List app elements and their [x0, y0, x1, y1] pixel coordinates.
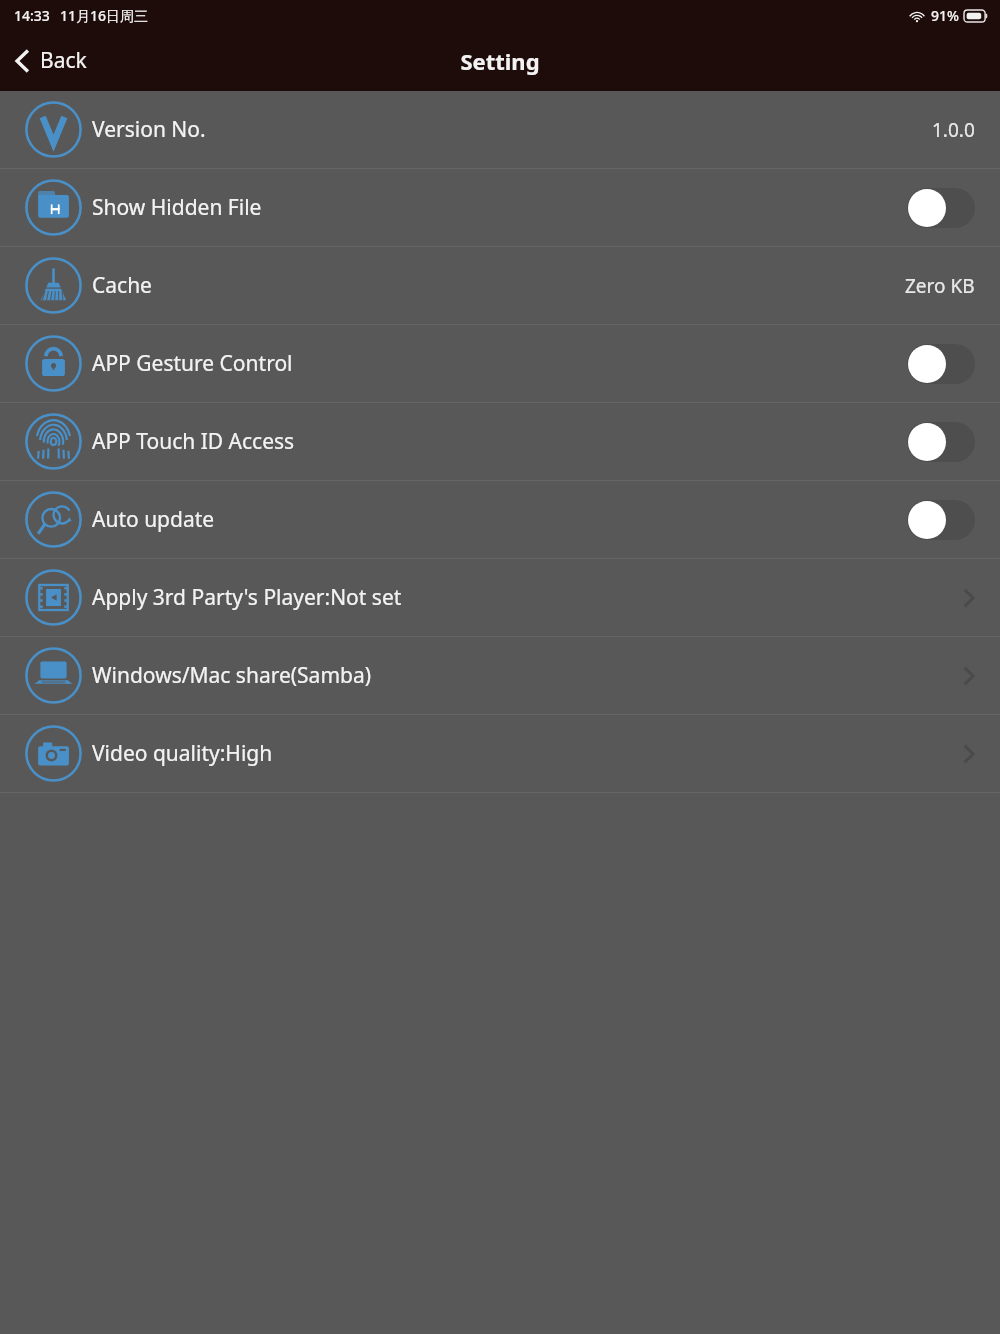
staticText: Auto update: [92, 505, 907, 534]
staticText: Version No.: [92, 115, 932, 144]
staticText: Zero KB: [905, 273, 975, 299]
staticText: Back: [40, 46, 87, 75]
button[interactable]: APP Touch ID Access: [0, 403, 1000, 480]
button[interactable]: Toggle: [907, 188, 975, 228]
staticText: Video quality:High: [92, 739, 962, 768]
button[interactable]: Toggle: [907, 422, 975, 462]
staticText: APP Touch ID Access: [92, 427, 907, 456]
staticText: Show Hidden File: [92, 193, 907, 222]
staticText: 14:33: [14, 6, 50, 25]
button[interactable]: Show Hidden File: [0, 169, 1000, 246]
staticText: Apply 3rd Party's Player:Not set: [92, 583, 962, 612]
staticText: APP Gesture Control: [92, 349, 907, 378]
staticText: Windows/Mac share(Samba): [92, 661, 962, 690]
staticText: Setting: [460, 46, 540, 76]
button[interactable]: Toggle: [907, 500, 975, 540]
button[interactable]: Video quality:High: [0, 715, 1000, 792]
button[interactable]: Windows/Mac share(Samba): [0, 637, 1000, 714]
staticText: Cache: [92, 271, 905, 300]
button[interactable]: Auto update: [0, 481, 1000, 558]
button[interactable]: Apply 3rd Party's Player:Not set: [0, 559, 1000, 636]
button[interactable]: Version No.: [0, 91, 1000, 168]
button[interactable]: APP Gesture Control: [0, 325, 1000, 402]
button[interactable]: Back: [0, 38, 101, 83]
button[interactable]: Cache: [0, 247, 1000, 324]
staticText: 11月16日周三: [60, 6, 149, 25]
staticText: 91%: [931, 6, 959, 25]
button[interactable]: Toggle: [907, 344, 975, 384]
staticText: 1.0.0: [932, 117, 975, 143]
